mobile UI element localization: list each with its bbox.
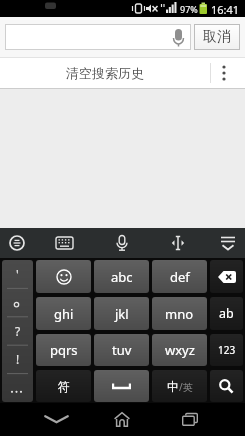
button[interactable]: wxyz — [152, 334, 207, 366]
button[interactable]: ab — [210, 297, 243, 330]
staticText: ' — [16, 266, 19, 282]
button[interactable]: def — [152, 260, 207, 293]
staticText: 取消 — [203, 28, 231, 46]
button[interactable]: 123 — [210, 334, 243, 366]
button[interactable]: jkl — [94, 297, 149, 330]
button[interactable] — [23, 403, 89, 436]
staticText: ab — [219, 305, 234, 322]
button[interactable] — [210, 260, 243, 293]
button[interactable]: 取消 — [194, 24, 240, 50]
staticText: 中 — [167, 379, 179, 394]
staticText: 清空搜索历史 — [66, 65, 144, 81]
button[interactable] — [36, 260, 91, 293]
button[interactable]: 清空搜索历史 — [0, 57, 245, 89]
staticText: ! — [16, 351, 20, 367]
staticText: 123 — [218, 343, 236, 357]
staticText: 97% — [180, 3, 198, 15]
button[interactable] — [5, 24, 191, 50]
staticText: 16:41 — [211, 2, 240, 17]
staticText: wxyz — [165, 341, 195, 359]
button[interactable]: ghi — [36, 297, 91, 330]
staticText: ghi — [54, 305, 74, 323]
button[interactable]: mno — [152, 297, 207, 330]
button[interactable]: tuv — [94, 334, 149, 366]
button[interactable] — [210, 370, 243, 402]
staticText: def — [170, 268, 190, 286]
staticText: abc — [111, 268, 133, 286]
staticText: ? — [15, 323, 21, 339]
button[interactable] — [89, 403, 155, 436]
staticText: pqrs — [50, 341, 78, 359]
button[interactable]: abc — [94, 260, 149, 293]
button[interactable]: ' — [2, 260, 33, 402]
button[interactable] — [157, 403, 223, 436]
button[interactable]: 中 — [152, 370, 207, 402]
staticText: 符 — [58, 379, 70, 394]
staticText: /英 — [179, 380, 193, 394]
button[interactable] — [94, 370, 149, 402]
staticText: tuv — [112, 341, 132, 359]
staticText: mno — [165, 305, 194, 323]
staticText: jkl — [115, 305, 129, 323]
button[interactable]: 符 — [36, 370, 91, 402]
button[interactable]: pqrs — [36, 334, 91, 366]
